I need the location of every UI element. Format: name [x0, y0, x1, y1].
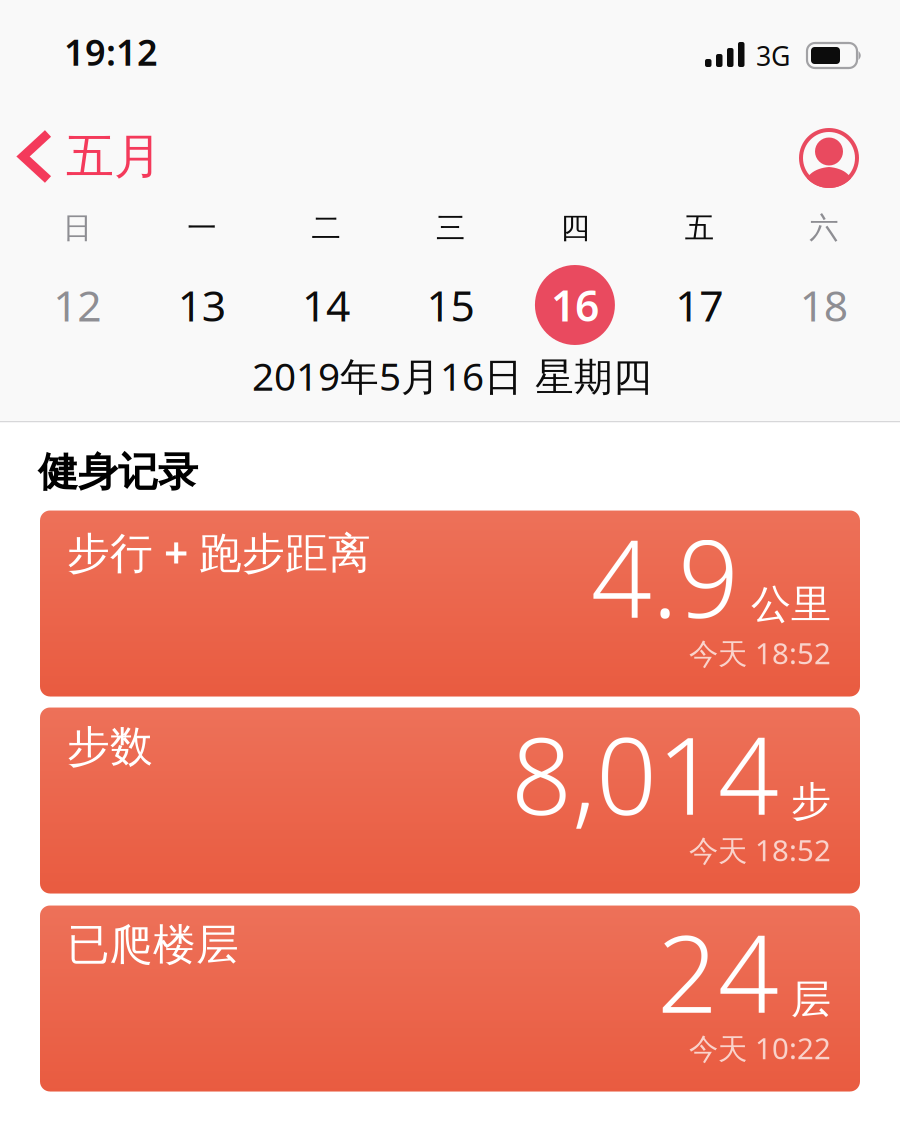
staticText: 五月: [66, 127, 162, 186]
staticText: 13: [178, 277, 226, 333]
staticText: 三: [436, 210, 465, 246]
button[interactable]: [799, 128, 859, 188]
button[interactable]: 五月: [17, 127, 162, 186]
staticText: 步: [791, 777, 831, 826]
staticText: 一: [187, 210, 216, 246]
staticText: 3G: [756, 38, 790, 73]
staticText: 二: [312, 210, 341, 246]
staticText: 16: [551, 277, 599, 333]
staticText: 2019年5月16日 星期四: [252, 350, 652, 401]
staticText: 公里: [751, 580, 831, 629]
staticText: 14: [302, 277, 350, 333]
staticText: 19:12: [64, 28, 158, 76]
button[interactable]: 13: [139, 265, 264, 345]
staticText: 步数: [67, 720, 153, 773]
staticText: 今天 10:22: [689, 1028, 831, 1067]
staticText: 五: [685, 210, 714, 246]
staticText: 四: [560, 210, 589, 246]
button[interactable]: 15: [388, 265, 513, 345]
button[interactable]: 18: [762, 265, 886, 345]
staticText: 24: [657, 900, 779, 1042]
staticText: 健身记录: [38, 447, 198, 497]
button[interactable]: 14: [264, 265, 388, 345]
staticText: 日: [63, 210, 92, 246]
staticText: 已爬楼层: [67, 918, 239, 971]
staticText: 4.9: [591, 505, 739, 647]
staticText: 层: [791, 975, 831, 1024]
staticText: 六: [809, 210, 838, 246]
staticText: 今天 18:52: [689, 830, 831, 869]
staticText: 12: [53, 277, 101, 333]
staticText: 18: [800, 277, 848, 333]
button[interactable]: 17: [637, 265, 761, 345]
staticText: 8,014: [511, 702, 779, 844]
button[interactable]: 步行 + 跑步距离: [40, 510, 860, 696]
staticText: 步行 + 跑步距离: [67, 523, 371, 580]
button[interactable]: 步数: [40, 707, 860, 893]
staticText: 15: [426, 277, 474, 333]
button[interactable]: 12: [15, 265, 139, 345]
staticText: 17: [675, 277, 723, 333]
button[interactable]: 已爬楼层: [40, 905, 860, 1091]
staticText: 今天 18:52: [689, 633, 831, 672]
button[interactable]: 16: [513, 265, 637, 345]
